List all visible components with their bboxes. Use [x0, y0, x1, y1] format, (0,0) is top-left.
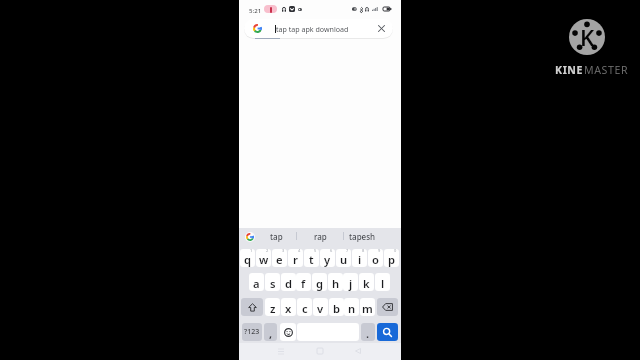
button[interactable]: n — [344, 298, 359, 316]
button[interactable]: , — [264, 323, 277, 341]
staticText: y — [324, 252, 331, 267]
staticText: e — [276, 252, 283, 267]
button[interactable]: z — [265, 298, 280, 316]
button[interactable]: Search — [377, 323, 398, 341]
staticText: MASTER — [584, 63, 629, 77]
button[interactable]: m — [360, 298, 375, 316]
staticText: 5:21 — [249, 6, 262, 14]
staticText: x — [285, 301, 292, 316]
button[interactable]: Backspace — [377, 298, 398, 316]
button[interactable]: Symbols — [242, 323, 262, 341]
button[interactable]: o — [368, 249, 383, 267]
button[interactable]: i — [352, 249, 367, 267]
button[interactable]: tap tap apk download — [244, 19, 393, 38]
button[interactable]: r — [288, 249, 303, 267]
staticText: j — [349, 276, 353, 291]
button[interactable]: rap — [297, 228, 344, 244]
staticText: b — [333, 301, 341, 316]
button[interactable]: d — [281, 273, 296, 291]
button[interactable]: Recent apps — [275, 345, 287, 357]
staticText: z — [270, 301, 276, 316]
staticText: d — [285, 276, 293, 291]
staticText: c — [302, 301, 308, 316]
staticText: g — [316, 276, 324, 291]
button[interactable]: . — [361, 323, 375, 341]
button[interactable]: Home — [314, 345, 326, 357]
button[interactable]: p — [384, 249, 399, 267]
staticText: 7 — [346, 249, 349, 253]
staticText: h — [332, 276, 340, 291]
staticText: 1 — [250, 249, 253, 253]
staticText: 8 — [362, 249, 365, 253]
staticText: tapesh — [349, 231, 376, 242]
button[interactable]: Emoji — [280, 323, 296, 341]
button[interactable]: f — [296, 273, 311, 291]
staticText: r — [293, 252, 298, 267]
staticText: 9 — [378, 249, 381, 253]
button[interactable]: b — [329, 298, 344, 316]
button[interactable]: w — [256, 249, 271, 267]
button[interactable]: e — [272, 249, 287, 267]
staticText: f — [301, 276, 306, 291]
button[interactable]: tapesh — [344, 228, 381, 244]
button[interactable]: j — [343, 273, 358, 291]
button[interactable]: h — [328, 273, 343, 291]
staticText: o — [372, 252, 379, 267]
button[interactable]: q — [240, 249, 255, 267]
staticText: q — [244, 252, 252, 267]
staticText: m — [362, 301, 373, 316]
button[interactable]: Back — [352, 345, 364, 357]
button[interactable]: c — [297, 298, 312, 316]
button[interactable]: l — [375, 273, 390, 291]
staticText: K — [580, 22, 595, 52]
button[interactable]: y — [320, 249, 335, 267]
button[interactable]: tap — [257, 228, 296, 244]
staticText: i — [358, 252, 362, 267]
button[interactable]: u — [336, 249, 351, 267]
button[interactable]: k — [359, 273, 374, 291]
staticText: tap — [270, 231, 283, 242]
staticText: 0 — [394, 249, 397, 253]
staticText: 6 — [330, 249, 333, 253]
button[interactable]: Google — [245, 232, 255, 242]
button[interactable]: Clear search — [378, 25, 385, 32]
staticText: w — [259, 252, 269, 267]
staticText: 2 — [266, 249, 269, 253]
staticText: n — [348, 301, 356, 316]
staticText: 4 — [298, 249, 301, 253]
button[interactable]: s — [265, 273, 280, 291]
staticText: . — [366, 326, 370, 341]
staticText: 5 — [314, 249, 317, 253]
button[interactable]: t — [304, 249, 319, 267]
staticText: tap tap apk download — [276, 24, 349, 34]
staticText: t — [309, 252, 314, 267]
staticText: 3 — [282, 249, 285, 253]
staticText: ?123 — [244, 327, 260, 337]
button[interactable]: x — [281, 298, 296, 316]
staticText: a — [253, 276, 260, 291]
staticText: s — [270, 276, 276, 291]
staticText: l — [381, 276, 385, 291]
button[interactable]: Shift — [241, 298, 263, 316]
staticText: k — [363, 276, 370, 291]
staticText: u — [340, 252, 348, 267]
button[interactable]: a — [249, 273, 264, 291]
button[interactable]: g — [312, 273, 327, 291]
staticText: p — [388, 252, 396, 267]
staticText: v — [317, 301, 324, 316]
staticText: KINE — [555, 63, 584, 77]
staticText: rap — [314, 231, 327, 242]
button[interactable]: v — [313, 298, 328, 316]
staticText: , — [269, 326, 273, 341]
